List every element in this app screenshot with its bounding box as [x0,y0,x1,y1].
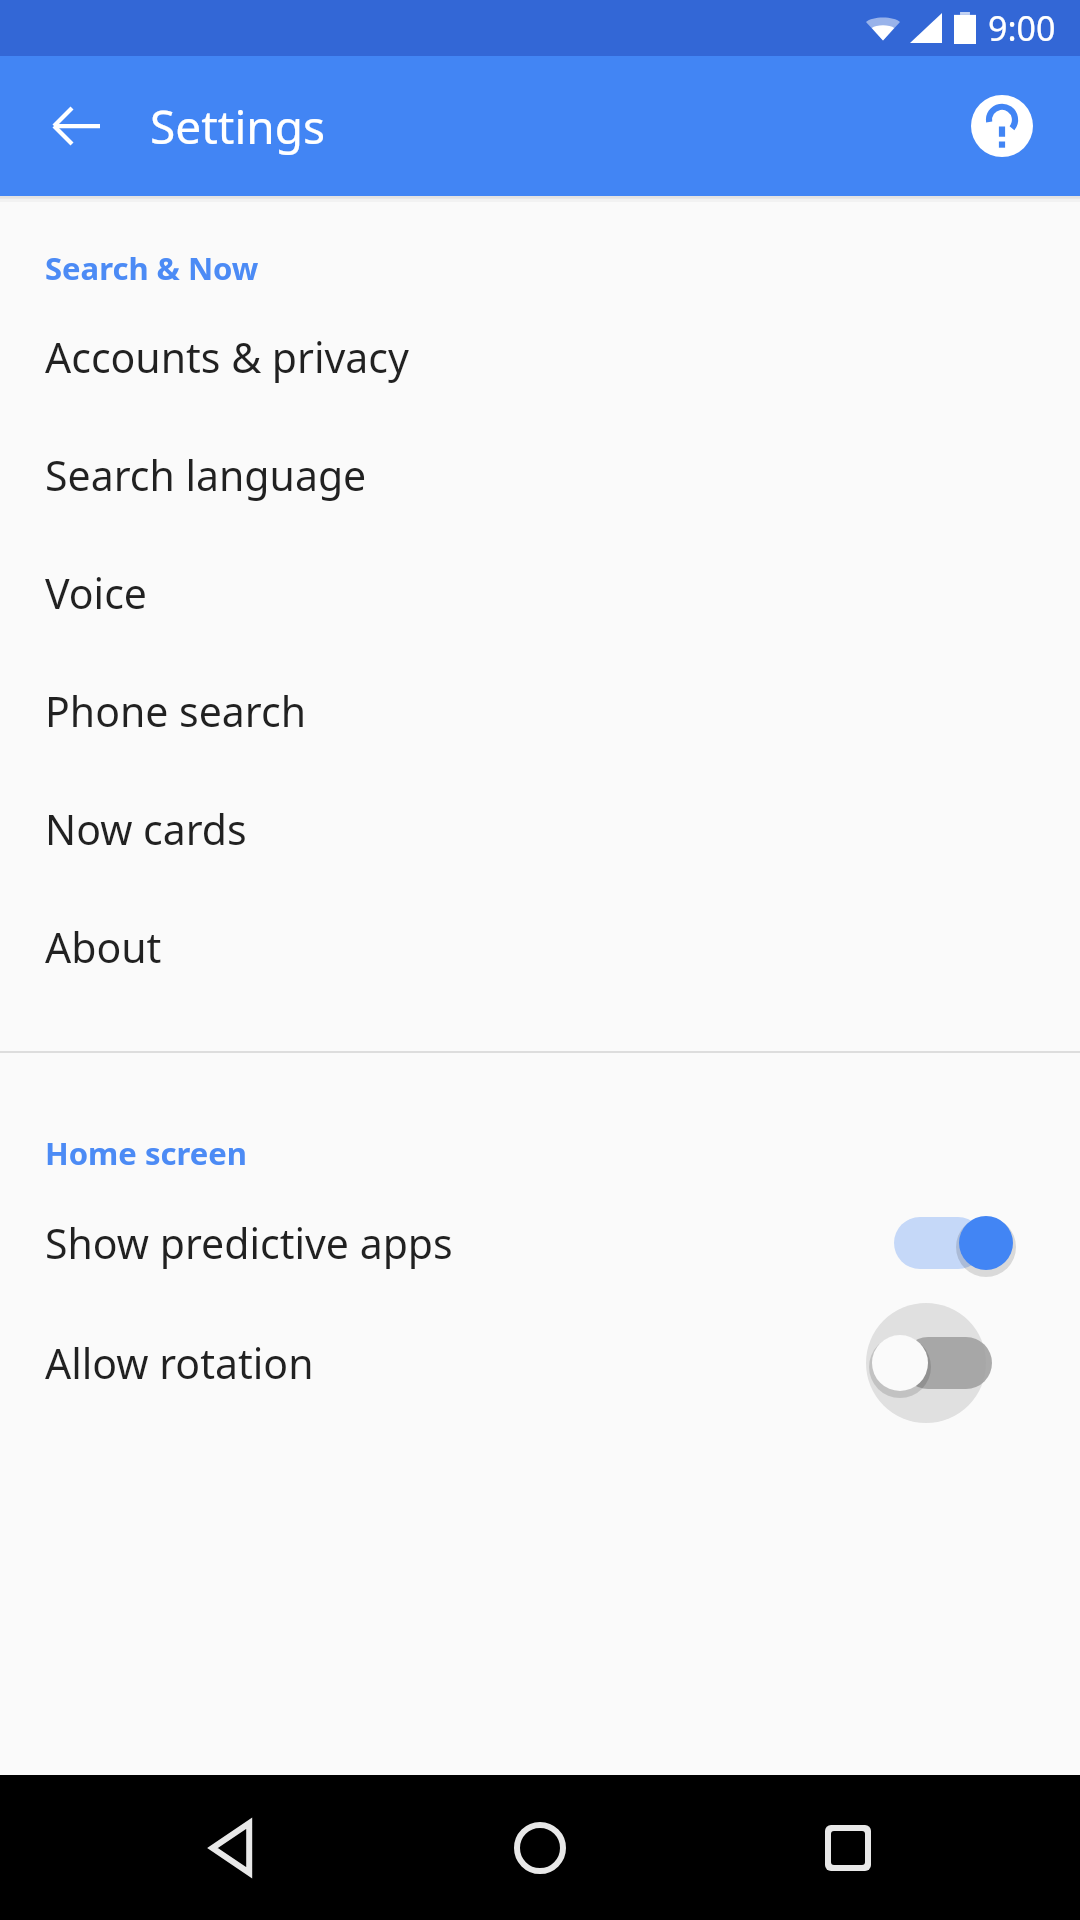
button[interactable]: Recent apps [773,1775,923,1920]
button[interactable]: Accounts & privacy [0,298,1080,416]
staticText: Allow rotation [45,1335,314,1391]
button[interactable]: Allow rotation [0,1303,1080,1423]
button[interactable]: Help [956,80,1048,172]
staticText: Show predictive apps [45,1215,453,1271]
button[interactable]: Voice [0,534,1080,652]
button[interactable]: Search language [0,416,1080,534]
button[interactable]: Back [30,80,122,172]
button[interactable]: About [0,888,1080,1006]
staticText: Now cards [45,801,247,857]
staticText: About [45,919,162,975]
staticText: Accounts & privacy [45,329,409,385]
staticText: Settings [150,95,326,158]
button[interactable]: Back [158,1775,308,1920]
button[interactable]: Home [465,1775,615,1920]
staticText: Voice [45,565,147,621]
staticText: 9:00 [988,5,1056,51]
staticText: Search & Now [45,247,259,289]
button[interactable]: Phone search [0,652,1080,770]
staticText: Home screen [45,1132,247,1174]
button[interactable]: Show predictive apps [0,1183,1080,1303]
button[interactable]: Now cards [0,770,1080,888]
staticText: Phone search [45,683,306,739]
staticText: Search language [45,447,367,503]
